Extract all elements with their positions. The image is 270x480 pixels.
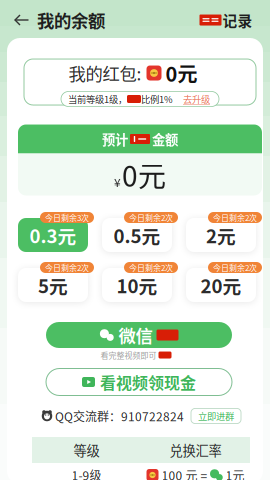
staticText: 0.5元: [113, 221, 160, 248]
button[interactable]: 5元: [18, 262, 88, 302]
staticText: 看视频领现金: [100, 370, 196, 394]
staticText: 微信: [118, 322, 152, 348]
staticText: 记录: [222, 9, 252, 31]
staticText: 今日剩余2次: [45, 262, 89, 273]
staticText: 今日剩余2次: [213, 262, 257, 273]
staticText: 今日剩余2次: [129, 212, 173, 223]
staticText: QQ交流群：910722824: [55, 407, 184, 425]
staticText: 1-9级: [71, 466, 101, 480]
button[interactable]: 看视频领现金: [46, 368, 232, 395]
staticText: 预计: [102, 129, 128, 149]
staticText: 0元: [165, 58, 197, 87]
staticText: 金额: [152, 129, 178, 149]
button[interactable]: 立即进群: [186, 408, 241, 423]
staticText: 0.3元: [29, 221, 76, 248]
button[interactable]: 微信: [46, 322, 232, 348]
staticText: 去升级: [183, 92, 210, 106]
staticText: 我的余额: [37, 7, 105, 33]
staticText: 10元: [116, 271, 157, 298]
staticText: 当前等级1级，: [68, 92, 127, 106]
staticText: 今日剩余3次: [45, 212, 89, 223]
staticText: 看完整视频即可: [100, 349, 156, 361]
staticText: 比例1%: [141, 92, 173, 106]
staticText: 立即进群: [198, 409, 234, 423]
button[interactable]: 去升级: [173, 92, 212, 106]
staticText: 等级: [73, 440, 99, 460]
staticText: 兑换汇率: [169, 440, 221, 460]
staticText: 0元: [122, 154, 166, 195]
button[interactable]: Back: [5, 5, 39, 35]
button[interactable]: 10元: [102, 262, 172, 302]
button[interactable]: 记录: [195, 7, 256, 33]
button[interactable]: 20元: [186, 262, 256, 302]
button[interactable]: 2元: [186, 212, 256, 252]
staticText: 今日剩余2次: [129, 262, 173, 273]
staticText: 100 元 =: [161, 466, 207, 480]
staticText: 20元: [200, 271, 241, 298]
staticText: 我的红包:: [68, 60, 141, 86]
staticText: 今日剩余2次: [213, 212, 257, 223]
staticText: 5元: [38, 271, 68, 298]
staticText: 2元: [206, 221, 236, 248]
button[interactable]: 0.3元: [18, 212, 88, 252]
button[interactable]: 0.5元: [102, 212, 172, 252]
staticText: 1元: [225, 466, 244, 480]
staticText: ¥: [114, 173, 121, 191]
